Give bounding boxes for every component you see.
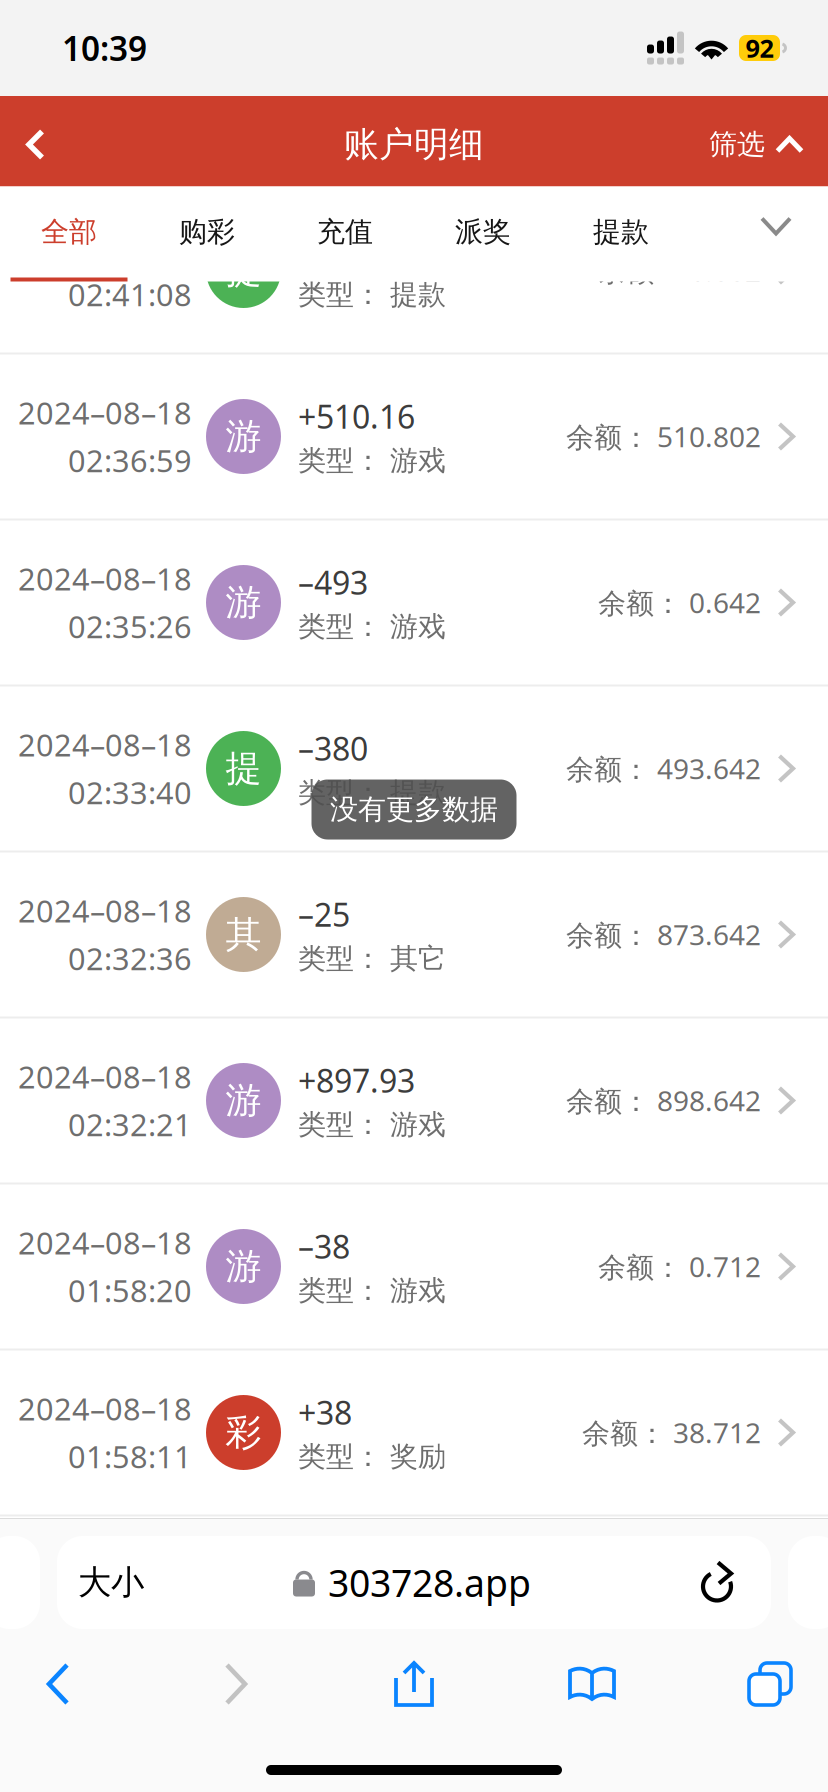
staticText: 余额： 0.712 bbox=[598, 1248, 761, 1285]
staticText: 大小 bbox=[78, 1562, 144, 1603]
button[interactable]: Share bbox=[356, 1651, 472, 1717]
staticText: 2024–08–18 bbox=[18, 558, 192, 599]
staticText: 充值 bbox=[317, 215, 373, 249]
staticText: 类型： 游戏 bbox=[298, 610, 446, 644]
staticText: 其 bbox=[225, 912, 261, 957]
staticText: 账户明细 bbox=[344, 123, 484, 166]
staticText: 游 bbox=[225, 414, 261, 459]
button[interactable]: 充值 bbox=[276, 186, 414, 281]
staticText: 01:58:20 bbox=[68, 1270, 192, 1311]
staticText: –600 bbox=[298, 229, 368, 272]
staticText: 派奖 bbox=[455, 215, 511, 249]
staticText: 类型： 游戏 bbox=[298, 1274, 446, 1308]
button[interactable]: Tabs bbox=[712, 1651, 828, 1717]
staticText: 2024–08–18 bbox=[18, 890, 192, 931]
button[interactable]: More filters bbox=[724, 186, 828, 281]
staticText: +510.16 bbox=[298, 395, 415, 438]
staticText: 余额： 0.642 bbox=[598, 584, 761, 621]
staticText: 303728.app bbox=[328, 1558, 531, 1607]
staticText: 提 bbox=[225, 248, 261, 293]
staticText: 02:35:26 bbox=[68, 606, 192, 647]
button[interactable]: 提款 bbox=[552, 186, 690, 281]
button[interactable]: 全部 bbox=[0, 186, 138, 281]
staticText: 2024–08–18 bbox=[18, 724, 192, 765]
staticText: 游 bbox=[225, 1078, 261, 1123]
button[interactable]: 2024–08–18 bbox=[0, 686, 828, 852]
button[interactable]: Back bbox=[0, 96, 75, 192]
button[interactable]: 派奖 bbox=[414, 186, 552, 281]
staticText: 没有更多数据 bbox=[330, 792, 498, 827]
staticText: 游 bbox=[225, 1244, 261, 1289]
staticText: 92 bbox=[745, 31, 773, 65]
staticText: 类型： 奖励 bbox=[298, 1440, 446, 1474]
button[interactable]: 2024–08–18 bbox=[0, 1018, 828, 1184]
button[interactable]: 2024–08–18 bbox=[0, 354, 828, 520]
staticText: 余额： 493.642 bbox=[566, 750, 761, 787]
button[interactable]: 2024–08–18 bbox=[0, 520, 828, 686]
staticText: 类型： 提款 bbox=[298, 278, 446, 312]
staticText: 2024–08–18 bbox=[18, 1222, 192, 1263]
staticText: 01:58:11 bbox=[68, 1436, 192, 1477]
staticText: 02:33:40 bbox=[68, 772, 192, 813]
staticText: –25 bbox=[298, 893, 350, 936]
staticText: 余额： 873.642 bbox=[566, 916, 761, 953]
staticText: –38 bbox=[298, 1225, 350, 1268]
staticText: 筛选 bbox=[709, 127, 765, 162]
staticText: 余额： 898.642 bbox=[566, 1082, 761, 1119]
button[interactable]: 2024–08–18 bbox=[0, 852, 828, 1018]
staticText: 提款 bbox=[593, 215, 649, 249]
staticText: 2024–08–18 bbox=[18, 226, 192, 267]
staticText: 02:32:21 bbox=[68, 1104, 192, 1145]
staticText: +897.93 bbox=[298, 1059, 415, 1102]
button[interactable]: Forward bbox=[178, 1651, 294, 1717]
staticText: 游 bbox=[225, 580, 261, 625]
staticText: 余额： 38.712 bbox=[582, 1414, 761, 1451]
button[interactable]: 筛选 bbox=[685, 99, 828, 190]
staticText: 10:39 bbox=[62, 26, 147, 70]
staticText: 02:36:59 bbox=[68, 440, 192, 481]
staticText: 类型： 游戏 bbox=[298, 1108, 446, 1142]
staticText: 提 bbox=[225, 746, 261, 791]
staticText: +38 bbox=[298, 1391, 352, 1434]
staticText: 2024–08–18 bbox=[18, 1056, 192, 1097]
staticText: 2024–08–18 bbox=[18, 392, 192, 433]
button[interactable]: 大小 bbox=[57, 1536, 771, 1629]
staticText: –380 bbox=[298, 727, 368, 770]
staticText: 全部 bbox=[41, 215, 97, 249]
staticText: 余额： 510.802 bbox=[566, 418, 761, 455]
button[interactable]: Bookmarks bbox=[534, 1651, 650, 1717]
button[interactable]: 2024–08–18 bbox=[0, 188, 828, 354]
staticText: 类型： 提款 bbox=[298, 776, 446, 810]
staticText: 2024–08–18 bbox=[18, 1388, 192, 1429]
staticText: 余额： 1.002 bbox=[598, 252, 761, 289]
button[interactable]: 2024–08–18 bbox=[0, 1350, 828, 1516]
staticText: 彩 bbox=[225, 1410, 261, 1455]
button[interactable]: Back bbox=[0, 1651, 116, 1717]
button[interactable]: 购彩 bbox=[138, 186, 276, 281]
staticText: 类型： 其它 bbox=[298, 942, 446, 976]
staticText: 02:32:36 bbox=[68, 938, 192, 979]
button[interactable]: 2024–08–18 bbox=[0, 1184, 828, 1350]
staticText: 02:41:08 bbox=[68, 274, 192, 315]
staticText: –493 bbox=[298, 561, 368, 604]
staticText: 类型： 游戏 bbox=[298, 444, 446, 478]
staticText: 购彩 bbox=[179, 215, 235, 249]
